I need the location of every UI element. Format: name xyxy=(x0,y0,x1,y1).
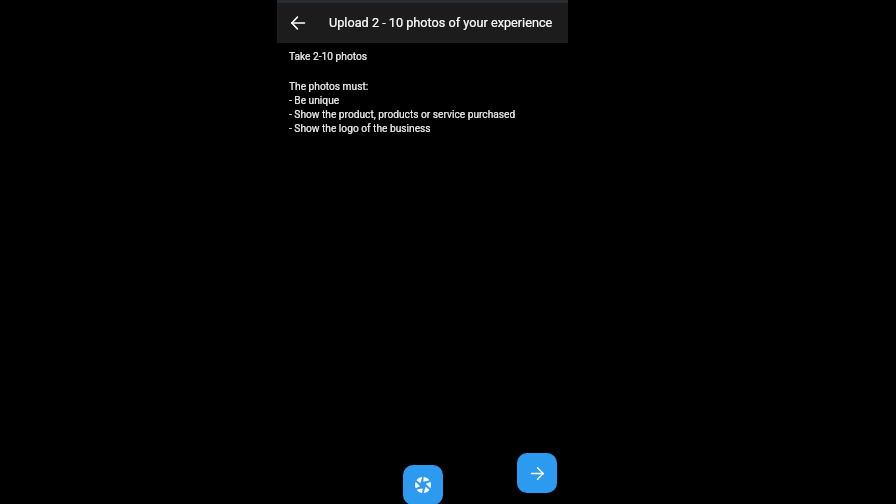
button[interactable]: Next xyxy=(517,453,557,493)
staticText: Take 2-10 photos xyxy=(289,51,368,63)
staticText: Upload 2 - 10 photos of your experience xyxy=(329,15,553,30)
button[interactable]: Take photo xyxy=(403,465,443,504)
button[interactable]: Back xyxy=(285,10,310,35)
staticText: The photos must: - Be unique - Show the … xyxy=(289,81,516,134)
